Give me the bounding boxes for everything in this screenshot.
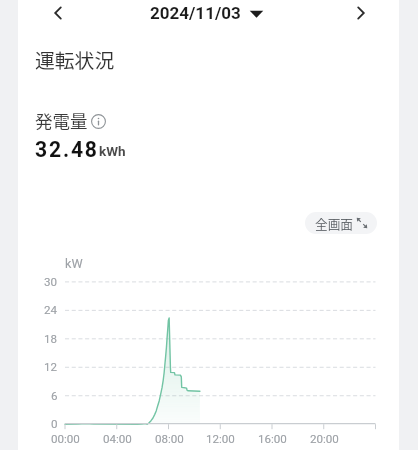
staticText: kWh xyxy=(99,143,126,159)
staticText: 運転状況 xyxy=(35,45,115,74)
staticText: 16:00 xyxy=(258,432,287,446)
staticText: 12:00 xyxy=(206,432,235,446)
staticText: 発電量 xyxy=(35,108,88,133)
staticText: 30 xyxy=(44,275,58,289)
staticText: 18 xyxy=(44,332,58,346)
button[interactable]: 全画面 xyxy=(305,212,377,234)
staticText: 20:00 xyxy=(310,432,339,446)
button[interactable]: Previous day xyxy=(44,0,72,27)
staticText: kW xyxy=(65,256,83,271)
staticText: 04:00 xyxy=(103,432,132,446)
staticText: 00:00 xyxy=(51,432,80,446)
staticText: 08:00 xyxy=(155,432,184,446)
button[interactable]: 2024/11/03 xyxy=(148,1,266,25)
button[interactable]: Info xyxy=(90,113,106,129)
button[interactable]: Next day xyxy=(347,0,375,27)
staticText: 24 xyxy=(44,303,58,317)
staticText: 2024/11/03 xyxy=(150,3,241,23)
staticText: 12 xyxy=(44,360,58,374)
staticText: 6 xyxy=(51,389,58,403)
staticText: 0 xyxy=(51,417,58,431)
staticText: 全画面 xyxy=(315,214,354,232)
staticText: 32.48 xyxy=(35,137,99,162)
